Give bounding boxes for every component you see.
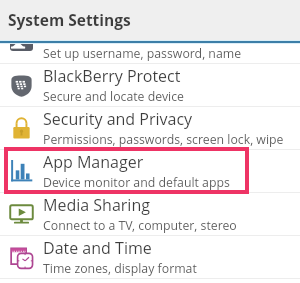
staticText: Media Sharing <box>43 194 150 216</box>
button[interactable]: App Manager <box>0 150 300 193</box>
staticText: Permissions, passwords, screen lock, wip… <box>43 131 284 148</box>
staticText: Secure and locate device <box>43 88 184 105</box>
button[interactable]: Media Sharing <box>0 193 300 236</box>
staticText: Security and Privacy <box>43 108 193 130</box>
button[interactable]: Date and Time <box>0 236 300 279</box>
staticText: Setup <box>43 22 87 44</box>
staticText: Connect to a TV, computer, stereo <box>43 217 237 234</box>
staticText: Device monitor and default apps <box>43 174 230 191</box>
button[interactable]: BlackBerry Protect <box>0 64 300 107</box>
staticText: Set up username, password, name <box>43 45 242 62</box>
button[interactable]: Security and Privacy <box>0 107 300 150</box>
staticText: Date and Time <box>43 237 152 259</box>
staticText: System Settings <box>8 9 131 30</box>
staticText: Time zones, display format <box>43 260 197 277</box>
staticText: BlackBerry Protect <box>43 65 181 87</box>
staticText: App Manager <box>43 151 144 173</box>
